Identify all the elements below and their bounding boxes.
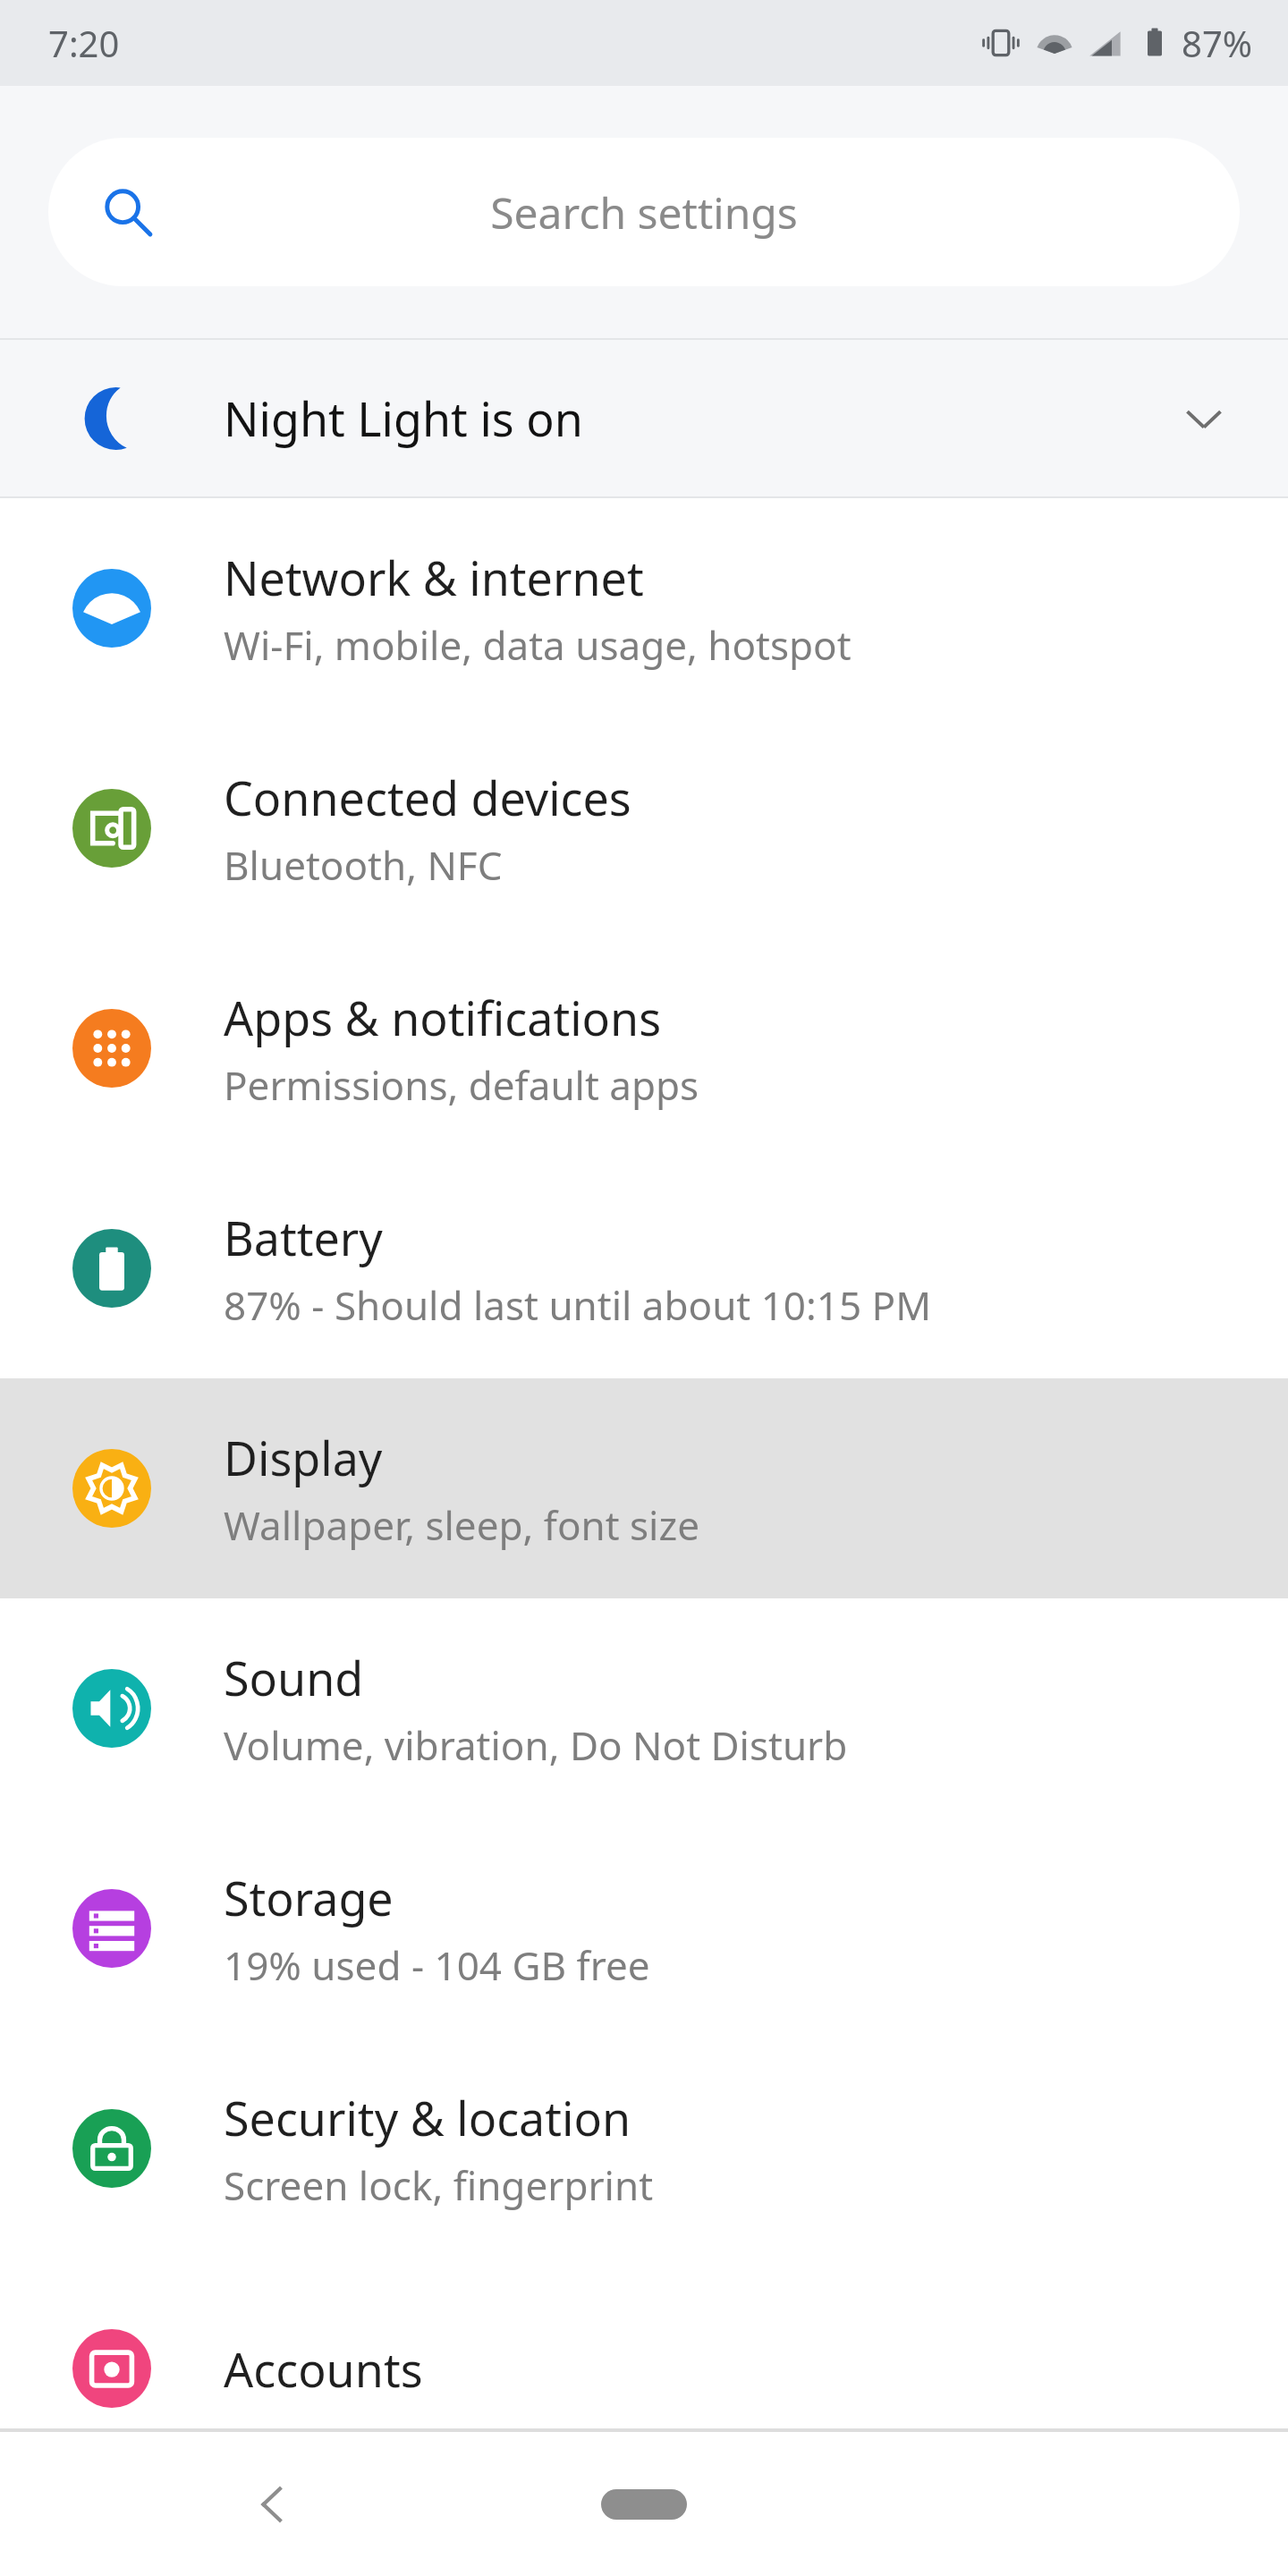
button[interactable]: Battery [0, 1158, 1288, 1378]
button[interactable]: Network & internet [0, 498, 1288, 718]
staticText: Security & location [224, 2086, 631, 2149]
button[interactable]: Storage [0, 1818, 1288, 2038]
staticText: Search settings [154, 183, 1134, 241]
button[interactable]: Night Light is on [0, 340, 1288, 496]
button[interactable]: Home [555, 2460, 733, 2549]
button[interactable]: Back [224, 2455, 322, 2554]
staticText: Apps & notifications [224, 986, 662, 1049]
staticText: Storage [224, 1866, 394, 1929]
staticText: Sound [224, 1646, 364, 1709]
staticText: Connected devices [224, 766, 631, 829]
button[interactable]: Display [0, 1378, 1288, 1598]
button[interactable]: Apps & notifications [0, 938, 1288, 1158]
staticText: Night Light is on [224, 386, 1168, 450]
staticText: 7:20 [48, 19, 120, 67]
staticText: Volume, vibration, Do Not Disturb [224, 1718, 848, 1772]
staticText: Screen lock, fingerprint [224, 2158, 654, 2212]
button[interactable]: Security & location [0, 2038, 1288, 2258]
staticText: Wallpaper, sleep, font size [224, 1498, 699, 1552]
button[interactable]: Search settings [48, 138, 1240, 286]
staticText: 87% - Should last until about 10:15 PM [224, 1278, 932, 1332]
button[interactable]: Expand Night Light [1168, 383, 1240, 454]
staticText: Display [224, 1426, 383, 1489]
staticText: Permissions, default apps [224, 1058, 699, 1112]
staticText: Battery [224, 1206, 383, 1269]
staticText: Wi-Fi, mobile, data usage, hotspot [224, 618, 852, 672]
staticText: 87% [1182, 19, 1252, 67]
staticText: Bluetooth, NFC [224, 838, 503, 892]
button[interactable]: Accounts [0, 2258, 1288, 2479]
staticText: Network & internet [224, 546, 644, 609]
button[interactable]: Connected devices [0, 718, 1288, 938]
button[interactable]: Sound [0, 1598, 1288, 1818]
staticText: Accounts [224, 2337, 423, 2401]
staticText: 19% used - 104 GB free [224, 1938, 650, 1992]
